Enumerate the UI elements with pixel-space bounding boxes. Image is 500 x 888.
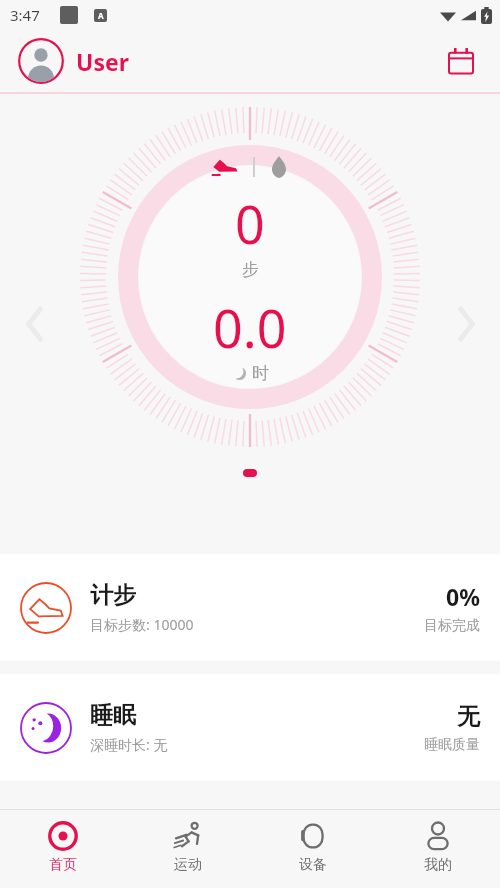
- button[interactable]: User: [18, 38, 129, 84]
- button[interactable]: Calories: [270, 156, 288, 178]
- staticText: A: [98, 10, 104, 21]
- button[interactable]: Next: [444, 302, 488, 346]
- staticText: 目标步数: 10000: [90, 615, 194, 634]
- staticText: 0%: [446, 581, 480, 612]
- staticText: 0: [235, 188, 265, 259]
- button[interactable]: 首页: [0, 810, 125, 888]
- staticText: 睡眠质量: [424, 736, 480, 754]
- staticText: User: [76, 46, 129, 77]
- staticText: 步: [242, 259, 259, 280]
- staticText: 睡眠: [90, 701, 136, 730]
- staticText: 运动: [174, 856, 202, 874]
- button[interactable]: 设备: [250, 810, 375, 888]
- button[interactable]: Previous: [12, 302, 56, 346]
- staticText: 0.0: [213, 292, 287, 363]
- button[interactable]: 我的: [375, 810, 500, 888]
- staticText: 设备: [299, 856, 327, 874]
- staticText: 无: [457, 702, 480, 731]
- staticText: 时: [252, 363, 269, 384]
- button[interactable]: 计步: [0, 554, 500, 661]
- staticText: 目标完成: [424, 617, 480, 635]
- button[interactable]: Steps: [212, 157, 238, 177]
- staticText: 计步: [90, 581, 136, 610]
- button[interactable]: Calendar: [440, 40, 482, 82]
- button[interactable]: 运动: [125, 810, 250, 888]
- staticText: 深睡时长: 无: [90, 735, 168, 754]
- staticText: 我的: [424, 856, 452, 874]
- staticText: 3:47: [10, 5, 40, 25]
- staticText: 首页: [49, 856, 77, 874]
- button[interactable]: 睡眠: [0, 674, 500, 781]
